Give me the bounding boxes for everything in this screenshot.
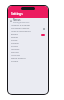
staticText: Security xyxy=(11,51,19,54)
button[interactable]: Apps & notifications xyxy=(8,30,48,33)
button[interactable]: Sound xyxy=(8,39,48,42)
staticText: Settings xyxy=(11,12,23,16)
staticText: nexus@gmail.com xyxy=(13,21,30,24)
staticText: System xyxy=(11,60,19,63)
staticText: Accounts xyxy=(11,54,20,57)
button[interactable]: Privacy xyxy=(8,45,48,48)
button[interactable]: Toggle xyxy=(41,34,45,36)
button[interactable]: System xyxy=(8,60,48,63)
staticText: Connected devices xyxy=(11,27,30,30)
button[interactable]: Accounts xyxy=(8,54,48,57)
button[interactable]: Storage xyxy=(8,42,48,45)
staticText: Apps & notifications xyxy=(11,30,31,33)
staticText: Network & internet xyxy=(11,24,30,27)
button[interactable]: Connected devices xyxy=(8,27,48,30)
staticText: Sound xyxy=(11,39,18,42)
button[interactable]: Location xyxy=(8,48,48,51)
staticText: Nexus xyxy=(13,18,21,21)
staticText: Display xyxy=(11,36,19,39)
button[interactable]: Nexus xyxy=(8,18,48,24)
button[interactable]: Digital balance xyxy=(8,57,48,60)
button[interactable]: Battery xyxy=(8,33,48,36)
staticText: Privacy xyxy=(11,45,18,48)
staticText: Digital balance xyxy=(11,57,26,60)
button[interactable]: Security xyxy=(8,51,48,54)
button[interactable]: Network & internet xyxy=(8,24,48,27)
staticText: Battery xyxy=(11,33,19,36)
staticText: Location xyxy=(11,48,20,51)
button[interactable]: Display xyxy=(8,36,48,39)
staticText: Storage xyxy=(11,42,19,45)
